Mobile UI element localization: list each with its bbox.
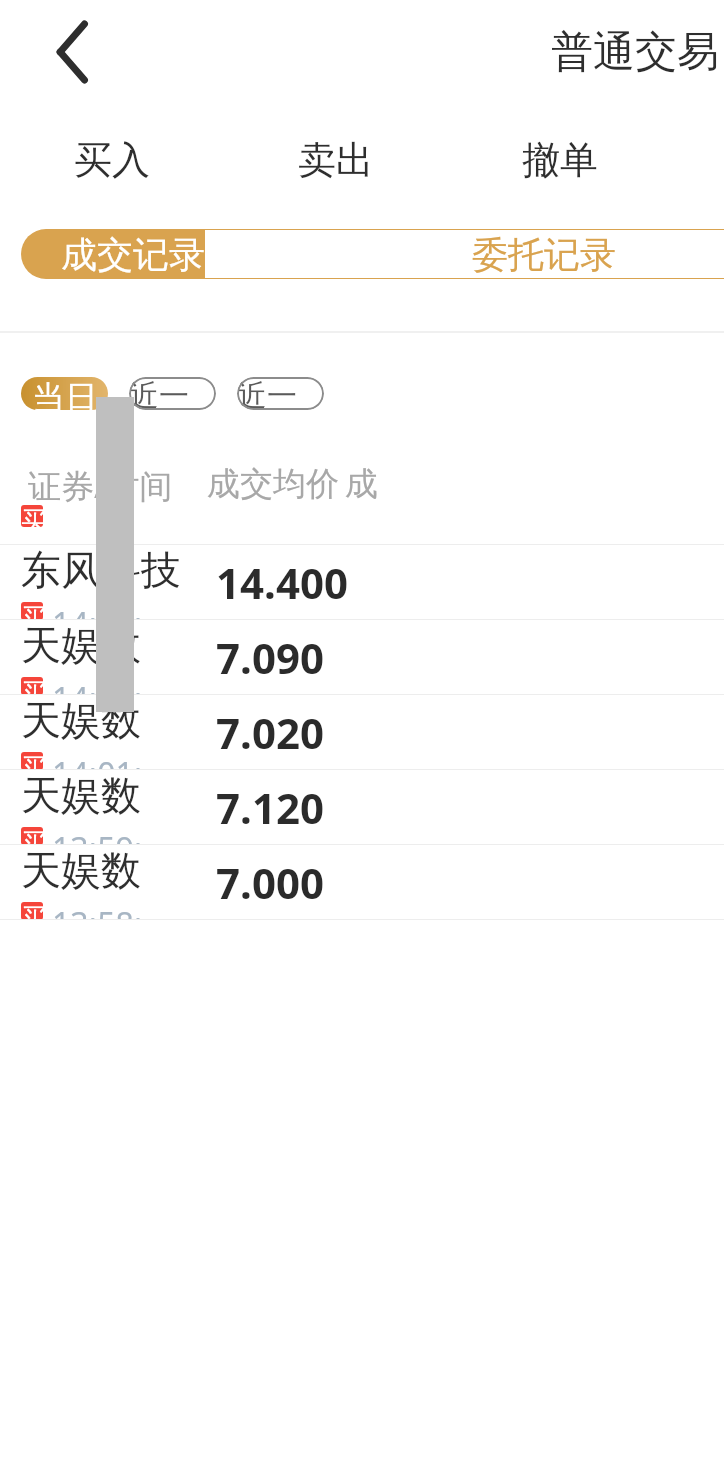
staticText: 7.000 — [216, 854, 324, 911]
staticText: 13:59: — [52, 827, 143, 845]
staticText: 证券/时间 — [28, 463, 173, 508]
staticText: 7.120 — [216, 779, 324, 836]
button[interactable]: 委托记录 — [204, 229, 724, 279]
staticText: 买 — [21, 677, 43, 695]
button[interactable]: 撤单 — [448, 104, 672, 216]
staticText: 成交记录 — [61, 232, 204, 277]
staticText: 14:01: — [52, 752, 143, 770]
staticText: 13:58: — [52, 902, 143, 920]
button[interactable]: 买入 — [0, 104, 224, 216]
staticText: 东风科技 — [21, 545, 181, 595]
staticText: 7.090 — [216, 629, 324, 686]
staticText: 近一周 — [129, 377, 216, 410]
button[interactable]: 卖出 — [224, 104, 448, 216]
staticText: 买 — [21, 827, 43, 845]
button[interactable]: 天娱数 — [0, 695, 724, 770]
button[interactable]: 天娱数 — [0, 770, 724, 845]
staticText: 普通交易 — [551, 26, 719, 79]
button[interactable]: 天娱数 — [0, 845, 724, 920]
staticText: 成交均价 — [207, 463, 339, 505]
staticText: 买入 — [74, 136, 150, 184]
staticText: 14:01: — [52, 677, 143, 695]
staticText: 买 — [21, 752, 43, 770]
staticText: 天娱数 — [21, 770, 141, 820]
staticText: 撤单 — [522, 136, 598, 184]
staticText: 委托记录 — [472, 232, 616, 277]
staticText: 天娱数 — [21, 845, 141, 895]
staticText: 成 — [345, 463, 378, 505]
staticText: 近一月 — [237, 377, 324, 410]
button[interactable]: 天娱数 — [0, 620, 724, 695]
staticText: 买 — [21, 602, 43, 620]
staticText: 14:04: — [52, 602, 143, 620]
staticText: 当日 — [32, 377, 98, 410]
staticText: 买 — [21, 505, 43, 527]
staticText: 7.020 — [216, 704, 324, 761]
staticText: 天娱数 — [21, 695, 141, 745]
button[interactable]: Back — [26, 6, 118, 98]
staticText: 卖出 — [298, 136, 374, 184]
button[interactable]: 近一月 — [237, 377, 324, 410]
staticText: 买 — [21, 902, 43, 920]
staticText: 天娱数 — [21, 620, 141, 670]
button[interactable]: 当日 — [21, 377, 108, 410]
button[interactable]: 近一周 — [129, 377, 216, 410]
button[interactable]: 东风科技 — [0, 545, 724, 620]
button[interactable]: 成交记录 — [21, 229, 204, 279]
staticText: 14.400 — [216, 554, 348, 611]
